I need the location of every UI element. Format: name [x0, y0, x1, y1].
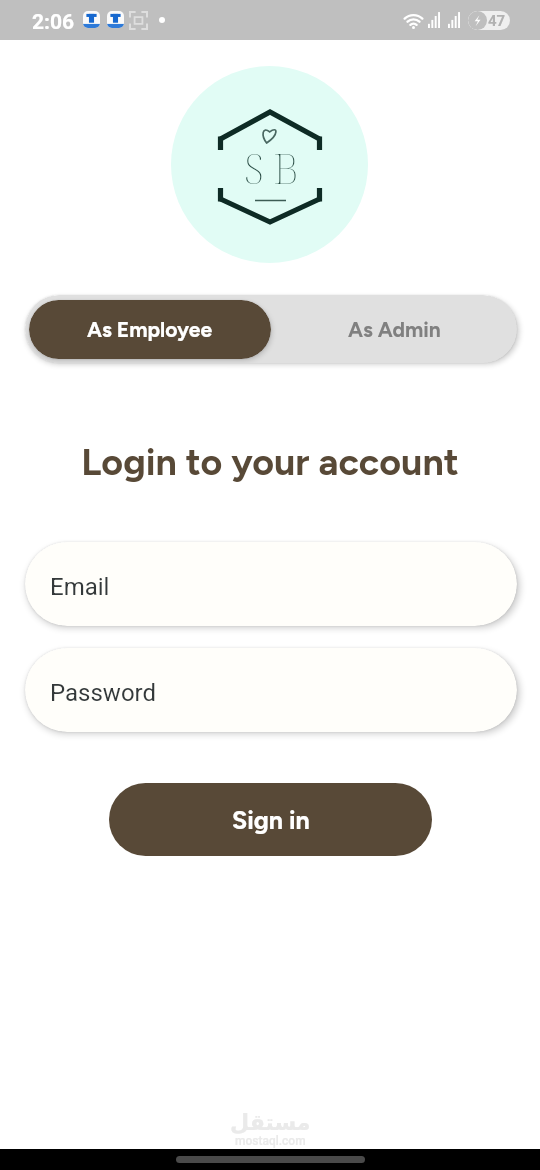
staticText: Sign in [232, 805, 310, 835]
staticText: Login to your account [81, 439, 459, 484]
staticText: Password [50, 679, 157, 707]
button[interactable]: As Admin [271, 295, 517, 363]
button[interactable]: Sign in [109, 783, 432, 856]
other: Battery 47 percent, charging [468, 11, 510, 30]
other: Screen capture [130, 12, 147, 29]
other: Mobile signal [428, 12, 440, 28]
button[interactable]: As Employee [29, 300, 271, 359]
button[interactable]: Email [25, 542, 517, 626]
other: SB logo [171, 66, 368, 263]
button[interactable]: Password [25, 648, 517, 732]
staticText: mostaql.com [235, 1134, 306, 1148]
staticText: As Admin [348, 317, 441, 342]
staticText: مستقل [230, 1110, 311, 1136]
staticText: As Employee [87, 317, 213, 342]
staticText: 47 [488, 12, 506, 30]
other: Wi-Fi [401, 11, 426, 29]
staticText: S B [243, 139, 300, 196]
staticText: 2:06 [32, 10, 75, 35]
staticText: Email [50, 573, 110, 601]
other: Mobile signal [448, 12, 460, 28]
